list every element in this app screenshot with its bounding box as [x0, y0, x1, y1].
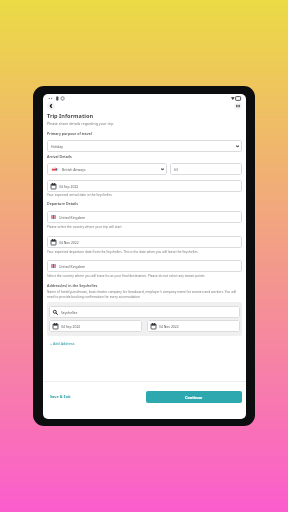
button[interactable]: 04 Sep 2022 — [47, 180, 242, 192]
button[interactable]: United Kingdom — [47, 211, 242, 223]
staticText: 04 Nov 2022 — [59, 240, 79, 245]
staticText: British Airways — [62, 167, 86, 172]
staticText: Primary purpose of travel — [47, 131, 92, 136]
button[interactable]: Save & Exit — [47, 394, 71, 399]
staticText: Trip Information — [47, 112, 94, 120]
staticText: 04 Sep 2022 — [61, 324, 81, 329]
staticText: Departure Details — [47, 201, 79, 206]
button[interactable]: British Airways — [47, 163, 167, 175]
button[interactable]: 04 Nov 2022 — [47, 236, 242, 248]
staticText: United Kingdom — [59, 264, 86, 269]
button[interactable]: Back — [47, 102, 55, 110]
staticText: Seychelles — [61, 310, 78, 315]
staticText: 63 — [174, 167, 178, 172]
staticText: Address(es) in the Seychelles — [47, 283, 98, 288]
staticText: Please select the country where your tri… — [47, 225, 122, 229]
staticText: + Add Address — [50, 341, 75, 346]
staticText: Select the country where you will travel… — [47, 274, 205, 278]
staticText: 04 Sep 2022 — [59, 184, 79, 189]
staticText: 04 Nov 2022 — [159, 324, 179, 329]
staticText: Please share details regarding your trip — [47, 121, 114, 126]
button[interactable]: + Add Address — [47, 341, 75, 346]
staticText: Holiday — [51, 144, 64, 149]
button[interactable]: Seychelles — [49, 306, 240, 318]
staticText: Arrival Details — [47, 154, 72, 159]
staticText: Your expected departure date from the Se… — [47, 250, 198, 254]
button[interactable]: Menu — [234, 102, 242, 110]
button[interactable]: 04 Sep 2022 — [49, 320, 142, 332]
button[interactable]: Continue — [146, 391, 242, 403]
staticText: Continue — [185, 395, 203, 400]
button[interactable]: 63 — [170, 163, 242, 175]
staticText: United Kingdom — [59, 215, 86, 220]
button[interactable]: United Kingdom — [47, 260, 242, 272]
button[interactable]: Holiday — [47, 140, 242, 152]
staticText: Your expected arrival date in the Seyche… — [47, 193, 112, 197]
staticText: Save & Exit — [50, 394, 71, 399]
button[interactable]: 04 Nov 2022 — [147, 320, 240, 332]
staticText: Name of hotel/guesthouse, boat charter c… — [47, 290, 242, 299]
